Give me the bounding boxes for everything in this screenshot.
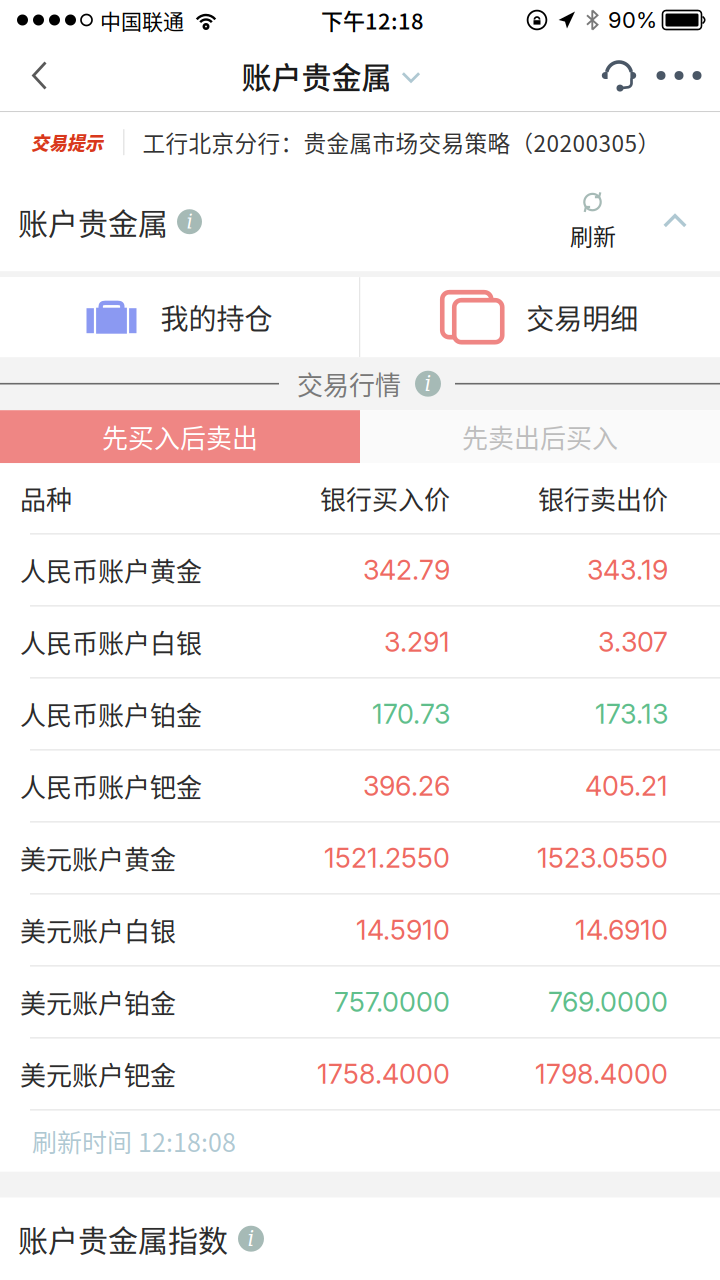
staticText: 我的持仓 bbox=[160, 297, 272, 337]
button[interactable]: 人民币账户黄金 bbox=[0, 535, 720, 607]
staticText: 银行买入价 bbox=[320, 479, 450, 517]
staticText: 刷新 bbox=[570, 218, 616, 252]
button[interactable]: 交易明细 bbox=[360, 277, 720, 357]
staticText: 交易明细 bbox=[526, 297, 638, 337]
staticText: 交易提示 bbox=[31, 129, 103, 155]
staticText: 美元账户钯金 bbox=[20, 1055, 176, 1093]
staticText: 342.79 bbox=[363, 554, 450, 586]
button[interactable]: 收起 bbox=[638, 172, 712, 271]
staticText: 人民币账户钯金 bbox=[20, 767, 202, 805]
staticText: 769.0000 bbox=[548, 986, 668, 1018]
staticText: 人民币账户黄金 bbox=[20, 551, 202, 589]
staticText: 账户贵金属指数 bbox=[18, 1217, 228, 1260]
staticText: 品种 bbox=[20, 479, 72, 517]
button[interactable]: 刷新 bbox=[548, 172, 638, 271]
staticText: 173.13 bbox=[595, 698, 668, 730]
button[interactable]: 更多 bbox=[646, 40, 712, 110]
button[interactable]: 人民币账户钯金 bbox=[0, 751, 720, 823]
staticText: i bbox=[186, 210, 192, 233]
staticText: 先买入后卖出 bbox=[102, 418, 258, 455]
button[interactable]: 美元账户钯金 bbox=[0, 1039, 720, 1111]
staticText: 14.5910 bbox=[356, 914, 450, 946]
button[interactable]: 先卖出后买入 bbox=[360, 410, 720, 463]
staticText: 405.21 bbox=[585, 770, 668, 802]
staticText: 396.26 bbox=[363, 770, 450, 802]
staticText: 757.0000 bbox=[334, 986, 450, 1018]
staticText: 交易行情 bbox=[297, 365, 401, 402]
staticText: 美元账户铂金 bbox=[20, 983, 176, 1021]
staticText: 美元账户白银 bbox=[20, 911, 176, 949]
staticText: 美元账户黄金 bbox=[20, 839, 176, 877]
staticText: 3.291 bbox=[384, 626, 450, 658]
staticText: 1521.2550 bbox=[324, 842, 450, 874]
staticText: 人民币账户铂金 bbox=[20, 695, 202, 733]
button[interactable]: 美元账户白银 bbox=[0, 895, 720, 967]
staticText: 14.6910 bbox=[575, 914, 668, 946]
button[interactable]: 交易提示 bbox=[0, 112, 720, 172]
button[interactable]: 美元账户铂金 bbox=[0, 967, 720, 1039]
staticText: 170.73 bbox=[372, 698, 450, 730]
button[interactable]: 人民币账户铂金 bbox=[0, 679, 720, 751]
button[interactable]: 美元账户黄金 bbox=[0, 823, 720, 895]
staticText: 343.19 bbox=[587, 554, 668, 586]
staticText: 1523.0550 bbox=[537, 842, 668, 874]
button[interactable]: 人民币账户白银 bbox=[0, 607, 720, 679]
staticText: 人民币账户白银 bbox=[20, 623, 202, 661]
staticText: 账户贵金属 bbox=[241, 54, 391, 97]
staticText: 1758.4000 bbox=[317, 1058, 450, 1090]
staticText: 90% bbox=[608, 7, 657, 33]
button[interactable]: 账户贵金属 bbox=[241, 40, 420, 110]
staticText: 中国联通 bbox=[100, 5, 184, 35]
button[interactable]: 返回 bbox=[8, 40, 70, 110]
staticText: 下午12:18 bbox=[321, 4, 424, 36]
staticText: i bbox=[247, 1226, 254, 1251]
staticText: 1798.4000 bbox=[535, 1058, 668, 1090]
staticText: 先卖出后买入 bbox=[462, 418, 618, 455]
staticText: 账户贵金属 bbox=[18, 200, 168, 243]
button[interactable]: 先买入后卖出 bbox=[0, 410, 360, 463]
button[interactable]: 客服 bbox=[592, 40, 646, 110]
staticText: 银行卖出价 bbox=[538, 479, 668, 517]
staticText: 3.307 bbox=[598, 626, 668, 658]
staticText: 刷新时间 12:18:08 bbox=[32, 1123, 236, 1159]
staticText: 工行北京分行：贵金属市场交易策略（20200305） bbox=[142, 126, 660, 158]
button[interactable]: 我的持仓 bbox=[0, 277, 359, 357]
staticText: i bbox=[424, 371, 431, 396]
